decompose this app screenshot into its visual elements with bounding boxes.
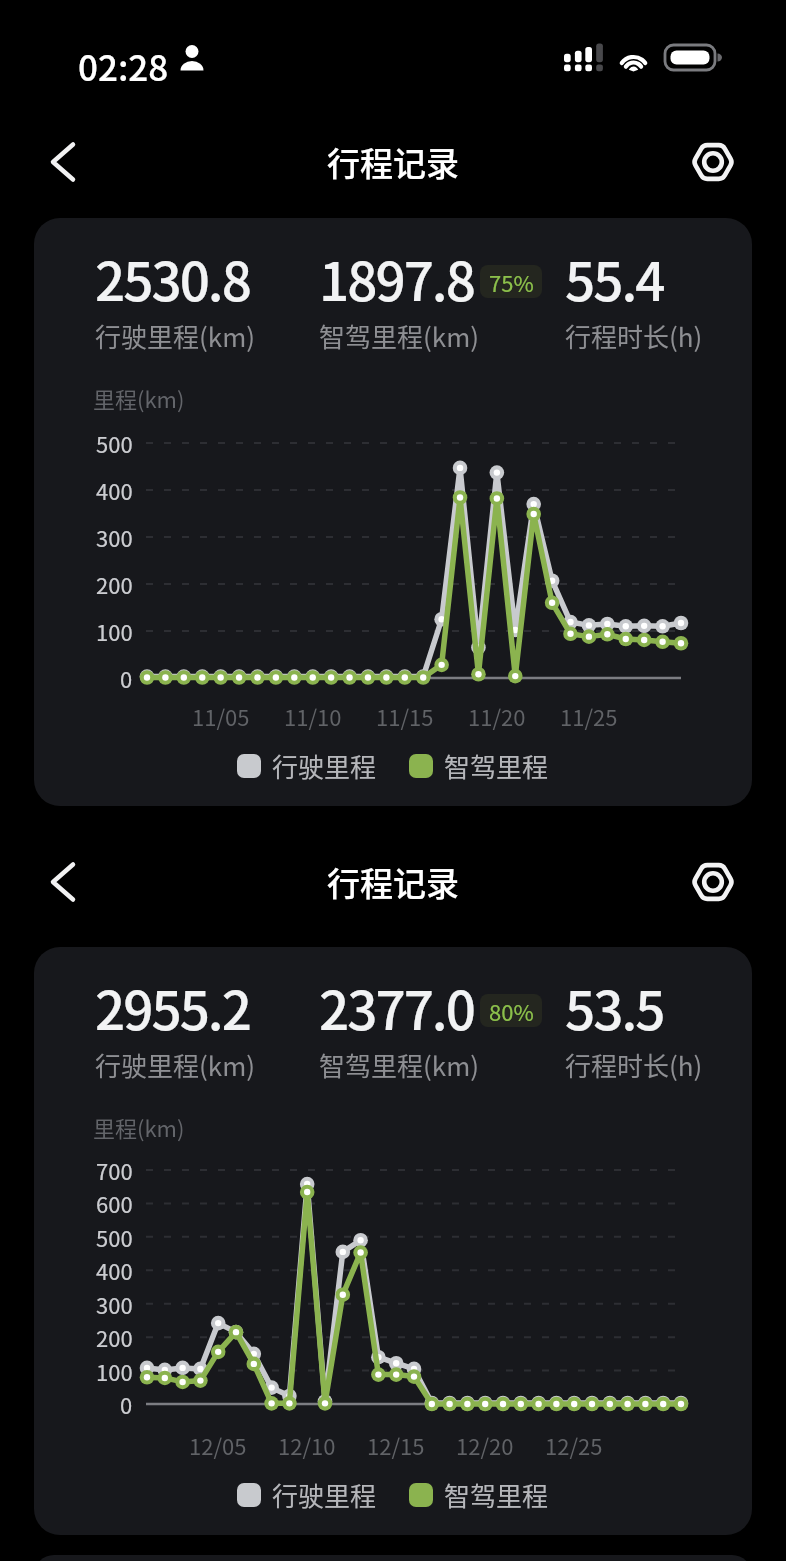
button[interactable] [40, 138, 88, 186]
button[interactable] [690, 859, 736, 905]
staticText: 0 [120, 1388, 133, 1420]
staticText: 行程时长(h) [565, 1046, 703, 1084]
staticText: 智驾里程 [444, 1476, 549, 1514]
staticText: 2955.2 [95, 969, 250, 1046]
staticText: 200 [96, 568, 133, 600]
staticText: 2377.0 [319, 969, 474, 1046]
button[interactable]: 行驶里程 [237, 747, 377, 785]
staticText: 0 [120, 662, 133, 694]
staticText: 12/20 [456, 1429, 514, 1461]
button[interactable]: 智驾里程 [409, 1476, 549, 1514]
staticText: 500 [96, 427, 133, 459]
staticText: 1897.8 [319, 240, 474, 317]
staticText: 12/10 [278, 1429, 336, 1461]
staticText: 行驶里程 [272, 747, 377, 785]
staticText: 12/15 [367, 1429, 425, 1461]
button[interactable] [690, 139, 736, 185]
staticText: 11/10 [284, 700, 342, 732]
staticText: 200 [96, 1321, 133, 1353]
staticText: 行驶里程(km) [95, 1046, 256, 1084]
staticText: 300 [96, 1288, 133, 1320]
staticText: 行程记录 [327, 138, 459, 186]
staticText: 700 [96, 1154, 133, 1186]
staticText: 智驾里程(km) [319, 1046, 480, 1084]
button[interactable]: 智驾里程 [409, 747, 549, 785]
staticText: 300 [96, 521, 133, 553]
staticText: 75% [489, 266, 534, 298]
staticText: 11/20 [468, 700, 526, 732]
staticText: 行程记录 [327, 858, 459, 906]
staticText: 53.5 [565, 969, 664, 1046]
staticText: 行驶里程(km) [95, 317, 256, 355]
staticText: 里程(km) [93, 1111, 185, 1143]
staticText: 100 [96, 1355, 133, 1387]
staticText: 500 [96, 1221, 133, 1253]
staticText: 11/05 [192, 700, 250, 732]
staticText: 400 [96, 474, 133, 506]
staticText: 11/25 [560, 700, 618, 732]
button[interactable] [40, 858, 88, 906]
staticText: 600 [96, 1187, 133, 1219]
staticText: 行驶里程 [272, 1476, 377, 1514]
staticText: 55.4 [565, 240, 664, 317]
staticText: 2530.8 [95, 240, 250, 317]
staticText: 12/05 [189, 1429, 247, 1461]
staticText: 12/25 [545, 1429, 603, 1461]
staticText: 100 [96, 615, 133, 647]
staticText: 里程(km) [93, 382, 185, 414]
staticText: 行程时长(h) [565, 317, 703, 355]
staticText: 400 [96, 1254, 133, 1286]
staticText: 11/15 [376, 700, 434, 732]
staticText: 智驾里程(km) [319, 317, 480, 355]
staticText: 02:28 [78, 40, 169, 91]
staticText: 80% [489, 995, 534, 1027]
button[interactable]: 行驶里程 [237, 1476, 377, 1514]
staticText: 智驾里程 [444, 747, 549, 785]
